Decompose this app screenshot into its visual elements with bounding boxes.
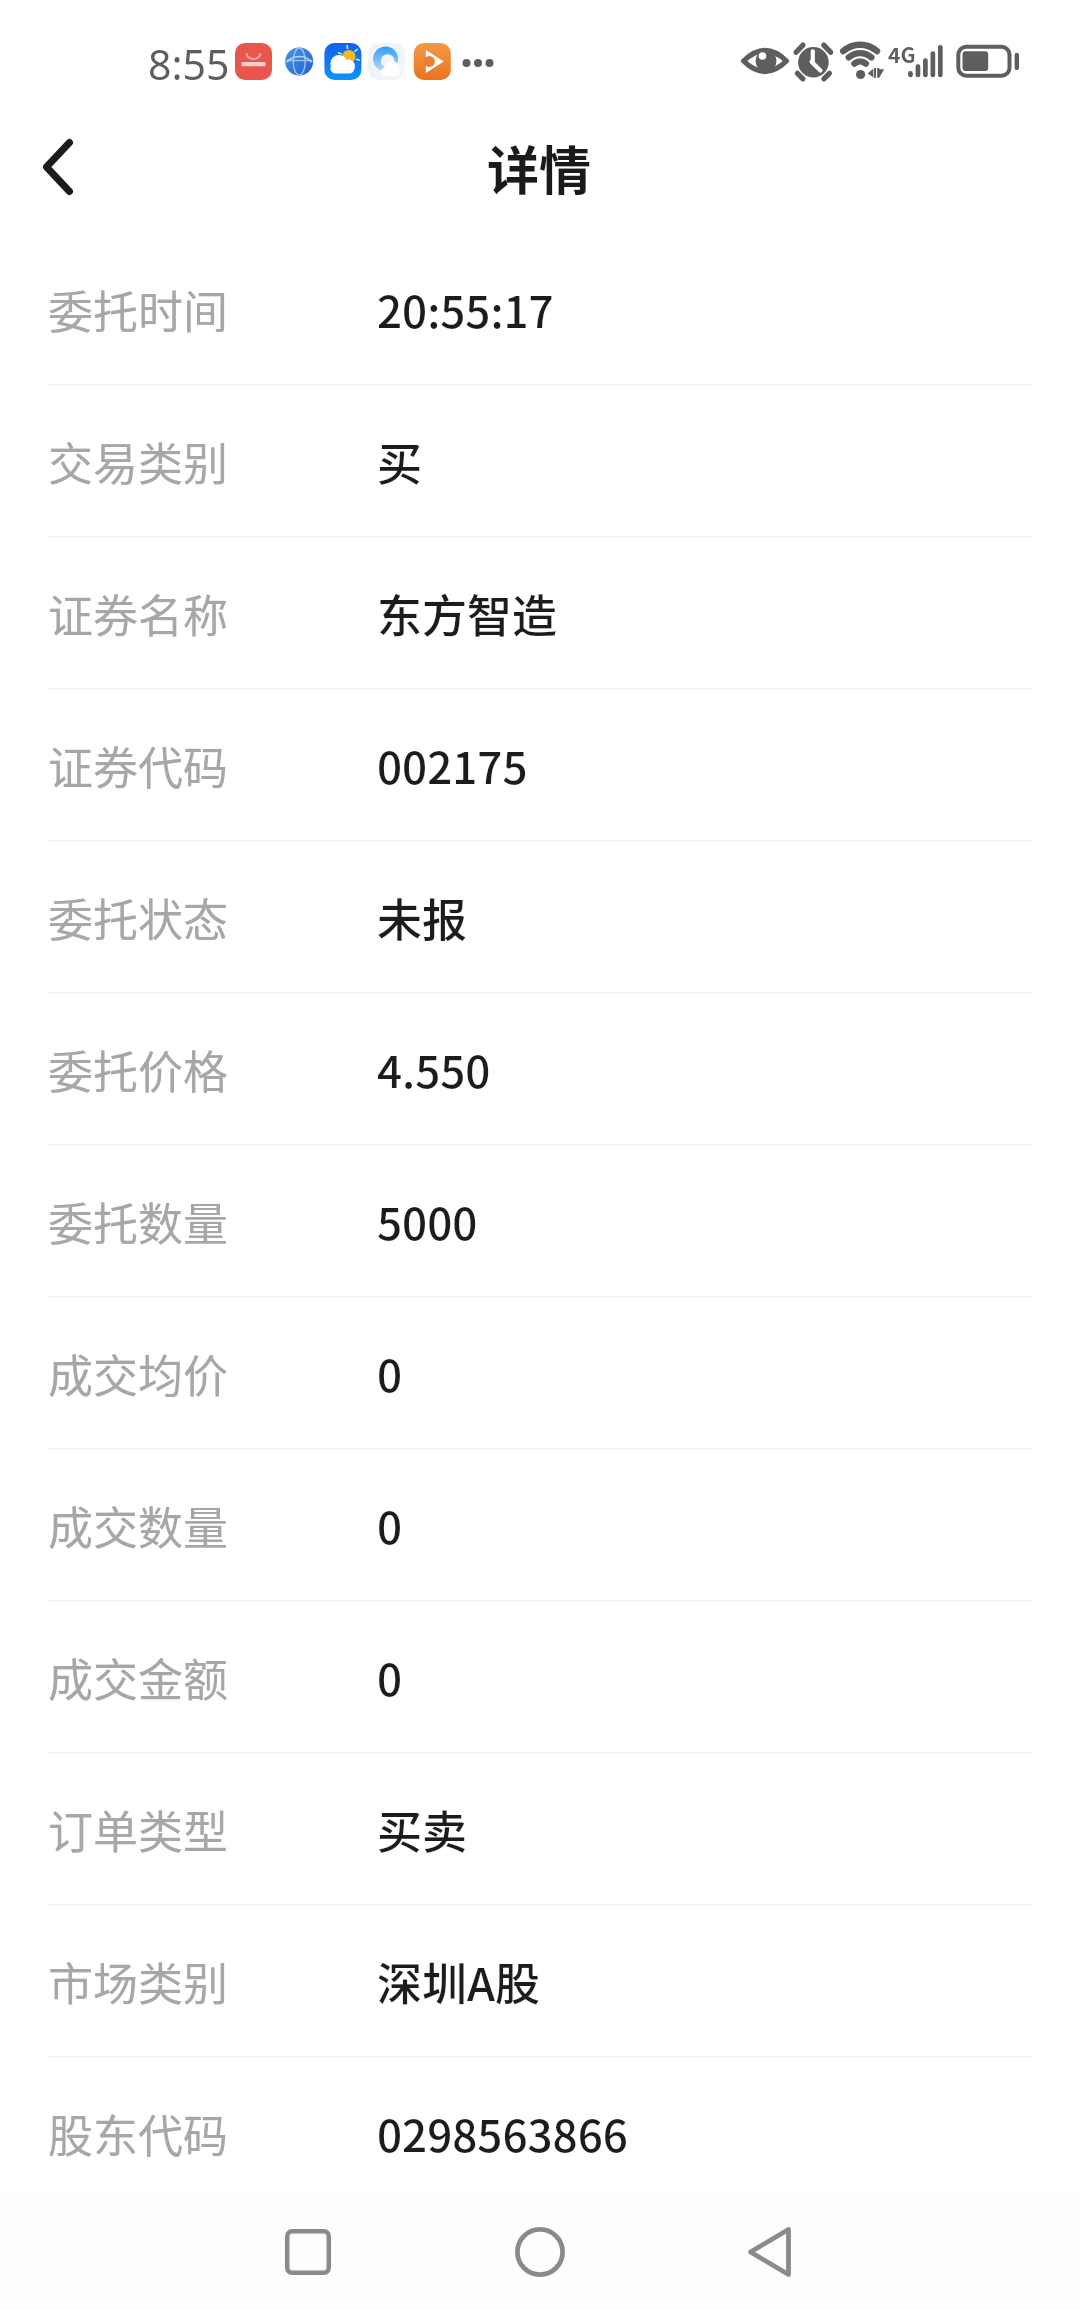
staticText: 证券名称 <box>48 581 229 646</box>
staticText: 订单类型 <box>48 1797 229 1862</box>
staticText: 成交均价 <box>48 1341 229 1406</box>
button[interactable]: 委托价格 <box>0 994 1080 1146</box>
button[interactable]: 成交金额 <box>0 1602 1080 1754</box>
staticText: 8:55 <box>148 36 230 92</box>
staticText: 委托价格 <box>48 1037 229 1102</box>
staticText: 5000 <box>377 1189 478 1253</box>
staticText: 买卖 <box>377 1797 468 1862</box>
staticText: 交易类别 <box>48 429 229 494</box>
button[interactable]: 订单类型 <box>0 1754 1080 1906</box>
staticText: 成交数量 <box>48 1493 229 1558</box>
staticText: 0 <box>377 1341 403 1405</box>
staticText: 委托时间 <box>48 277 229 342</box>
button[interactable]: Recents <box>248 2195 368 2308</box>
staticText: 买 <box>377 429 423 494</box>
staticText: 未报 <box>377 885 468 950</box>
button[interactable]: 证券代码 <box>0 690 1080 842</box>
staticText: 20:55:17 <box>377 277 554 341</box>
button[interactable]: 股东代码 <box>0 2058 1080 2210</box>
button[interactable]: 交易类别 <box>0 386 1080 538</box>
button[interactable]: 委托数量 <box>0 1146 1080 1298</box>
button[interactable]: Back <box>709 2195 829 2308</box>
button[interactable]: 成交均价 <box>0 1298 1080 1450</box>
button[interactable]: 成交数量 <box>0 1450 1080 1602</box>
staticText: 0 <box>377 1645 403 1709</box>
staticText: 委托数量 <box>48 1189 229 1254</box>
button[interactable]: 委托时间 <box>0 234 1080 386</box>
button[interactable]: 证券名称 <box>0 538 1080 690</box>
staticText: 0298563866 <box>377 2101 628 2165</box>
staticText: 0 <box>377 1493 403 1557</box>
button[interactable]: Back <box>0 105 116 229</box>
staticText: 002175 <box>377 733 528 797</box>
staticText: 东方智造 <box>377 581 558 646</box>
button[interactable]: 委托状态 <box>0 842 1080 994</box>
staticText: 详情 <box>487 130 592 205</box>
button[interactable]: Home <box>480 2195 600 2308</box>
staticText: 深圳A股 <box>377 1949 540 2014</box>
staticText: 证券代码 <box>48 733 229 798</box>
staticText: 成交金额 <box>48 1645 229 1710</box>
staticText: 股东代码 <box>48 2101 229 2166</box>
button[interactable]: 市场类别 <box>0 1906 1080 2058</box>
staticText: 4.550 <box>377 1037 491 1101</box>
staticText: 委托状态 <box>48 885 229 950</box>
staticText: 市场类别 <box>48 1949 229 2014</box>
staticText: 4G <box>888 39 916 69</box>
